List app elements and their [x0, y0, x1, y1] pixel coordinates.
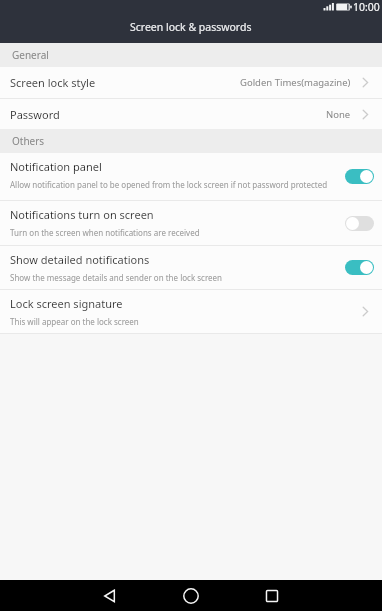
- button[interactable]: Notification panel: [0, 153, 382, 200]
- staticText: This will appear on the lock screen: [10, 316, 139, 327]
- button[interactable]: Notifications turn on screen: [0, 201, 382, 245]
- staticText: Lock screen signature: [10, 296, 123, 311]
- button[interactable]: [179, 584, 203, 608]
- button[interactable]: Password: [0, 99, 382, 129]
- button[interactable]: [260, 584, 284, 608]
- staticText: Show detailed notifications: [10, 252, 150, 267]
- button[interactable]: Lock screen signature: [0, 290, 382, 333]
- staticText: Others: [12, 134, 45, 148]
- button[interactable]: Show detailed notifications: [0, 246, 382, 289]
- staticText: General: [12, 48, 49, 62]
- staticText: Notifications turn on screen: [10, 207, 154, 222]
- staticText: Screen lock style: [10, 75, 96, 90]
- staticText: Golden Times(magazine): [240, 76, 351, 89]
- staticText: Show the message details and sender on t…: [10, 272, 223, 283]
- staticText: 10:00: [353, 0, 380, 14]
- button[interactable]: Screen lock style: [0, 67, 382, 98]
- button[interactable]: [98, 584, 122, 608]
- staticText: Screen lock & passwords: [130, 20, 252, 34]
- button[interactable]: [345, 216, 374, 231]
- button[interactable]: [345, 169, 374, 184]
- staticText: Password: [10, 107, 60, 122]
- staticText: Turn on the screen when notifications ar…: [10, 227, 200, 238]
- staticText: Notification panel: [10, 159, 102, 174]
- staticText: Allow notification panel to be opened fr…: [10, 179, 328, 190]
- button[interactable]: [345, 260, 374, 275]
- staticText: None: [326, 108, 351, 121]
